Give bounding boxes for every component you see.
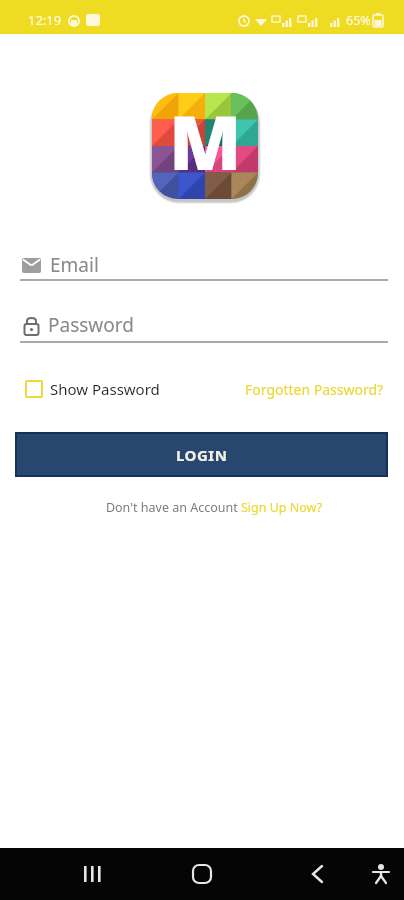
button[interactable] (0, 848, 134, 900)
button[interactable] (134, 848, 269, 900)
button[interactable]: Show Password (25, 379, 160, 399)
staticText: Email (50, 252, 99, 278)
staticText: Show Password (50, 379, 160, 399)
button[interactable]: Don't have an Account Sign Up Now? (24, 499, 404, 516)
staticText: M (169, 90, 242, 192)
staticText: 12:19 (28, 11, 62, 29)
staticText: Password (48, 312, 134, 338)
button[interactable]: LOGIN (17, 434, 386, 475)
button[interactable] (269, 848, 404, 900)
staticText: LOGIN (176, 445, 228, 465)
staticText: 65% (346, 12, 371, 29)
button[interactable]: Forgotten Password? (245, 380, 384, 399)
